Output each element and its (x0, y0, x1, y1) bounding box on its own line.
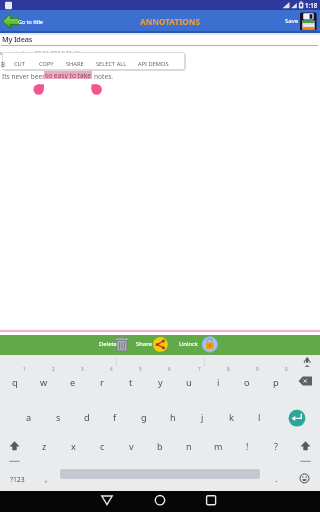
staticText: Go to title (18, 18, 43, 25)
button[interactable]: h (162, 407, 184, 427)
staticText: COPY (39, 60, 54, 68)
staticText: c (100, 440, 105, 452)
button[interactable]: u (178, 372, 200, 392)
staticText: h (170, 411, 176, 424)
button[interactable]: x (62, 436, 84, 456)
button[interactable]: c (91, 436, 113, 456)
staticText: notes. (94, 72, 114, 81)
button[interactable]: r (91, 372, 113, 392)
button[interactable]: z (33, 436, 55, 456)
button[interactable]: q (4, 372, 26, 392)
button[interactable]: b (149, 436, 171, 456)
staticText: ANNOTATIONS (140, 16, 201, 27)
button[interactable]: API DEMOS (131, 57, 175, 71)
staticText: 7 (198, 366, 201, 372)
staticText: t (129, 376, 133, 389)
button[interactable]: g (133, 407, 155, 427)
staticText: q (12, 376, 18, 389)
button[interactable] (96, 335, 130, 355)
button[interactable] (280, 10, 320, 32)
button[interactable] (145, 491, 175, 512)
staticText: s (56, 411, 61, 424)
staticText: d (84, 411, 90, 424)
staticText: 6 (168, 366, 171, 372)
staticText: 1:18 (305, 1, 318, 9)
button[interactable]: . (269, 471, 283, 485)
staticText: a (26, 411, 32, 424)
button[interactable]: ? (265, 436, 287, 456)
staticText: v (129, 440, 134, 452)
button[interactable] (196, 491, 226, 512)
staticText: API DEMOS (138, 60, 169, 68)
button[interactable]: n (178, 436, 200, 456)
staticText: ! (246, 440, 249, 452)
button[interactable]: , (39, 471, 53, 485)
button[interactable]: t (120, 372, 142, 392)
staticText: SELECT ALL (96, 60, 127, 68)
staticText: 0 (285, 366, 288, 372)
staticText: 9 (256, 366, 259, 372)
button[interactable]: i (207, 372, 229, 392)
button[interactable]: l (248, 407, 270, 427)
staticText: Share (136, 340, 152, 348)
staticText: My Ideas (2, 34, 32, 44)
button[interactable]: B (0, 57, 8, 71)
staticText: Delete (99, 340, 117, 348)
button[interactable]: o (236, 372, 258, 392)
button[interactable]: w (33, 372, 55, 392)
button[interactable]: j (191, 407, 213, 427)
button[interactable]: SHARE (59, 57, 91, 71)
button[interactable]: p (265, 372, 287, 392)
staticText: b (157, 440, 163, 452)
button[interactable]: a (18, 407, 40, 427)
button[interactable]: s (47, 407, 69, 427)
staticText: l (258, 411, 261, 424)
button[interactable]: y (149, 372, 171, 392)
button[interactable] (295, 470, 315, 488)
button[interactable] (295, 436, 317, 456)
staticText: ?123 (10, 475, 25, 484)
button[interactable]: m (207, 436, 229, 456)
staticText: so easy to take (45, 71, 91, 79)
staticText: 2 (52, 366, 55, 372)
staticText: i (217, 376, 220, 389)
staticText: ? (274, 440, 278, 452)
button[interactable] (4, 436, 26, 456)
button[interactable]: d (76, 407, 98, 427)
button[interactable]: f (104, 407, 126, 427)
staticText: , (45, 472, 48, 484)
button[interactable] (92, 491, 122, 512)
staticText: . (275, 472, 278, 484)
staticText: o (244, 376, 250, 389)
staticText: CUT (14, 60, 25, 68)
button[interactable]: ?123 (4, 472, 30, 486)
staticText: Unlock (179, 340, 199, 348)
button[interactable]: k (220, 407, 242, 427)
button[interactable] (286, 407, 308, 429)
button[interactable] (0, 11, 110, 31)
staticText: 4 (110, 366, 113, 372)
staticText: Save (285, 17, 299, 25)
button[interactable]: CUT (5, 57, 33, 71)
staticText: 8 (227, 366, 230, 372)
button[interactable]: e (62, 372, 84, 392)
button[interactable] (133, 335, 169, 355)
staticText: 1 (23, 366, 26, 372)
staticText: e (70, 376, 76, 389)
button[interactable]: v (120, 436, 142, 456)
staticText: Note created on 28.11.2014 21:41 (0, 49, 79, 57)
button[interactable] (294, 371, 318, 391)
staticText: 5 (139, 366, 142, 372)
staticText: B (1, 60, 6, 68)
staticText: j (201, 411, 204, 424)
staticText: k (229, 411, 234, 424)
staticText: 3 (81, 366, 84, 372)
staticText: f (113, 411, 117, 424)
button[interactable]: SELECT ALL (89, 57, 133, 71)
button[interactable] (178, 335, 220, 355)
staticText: Its never been (2, 72, 44, 81)
staticText: r (100, 376, 104, 389)
button[interactable]: COPY (31, 57, 61, 71)
button[interactable]: ! (236, 436, 258, 456)
